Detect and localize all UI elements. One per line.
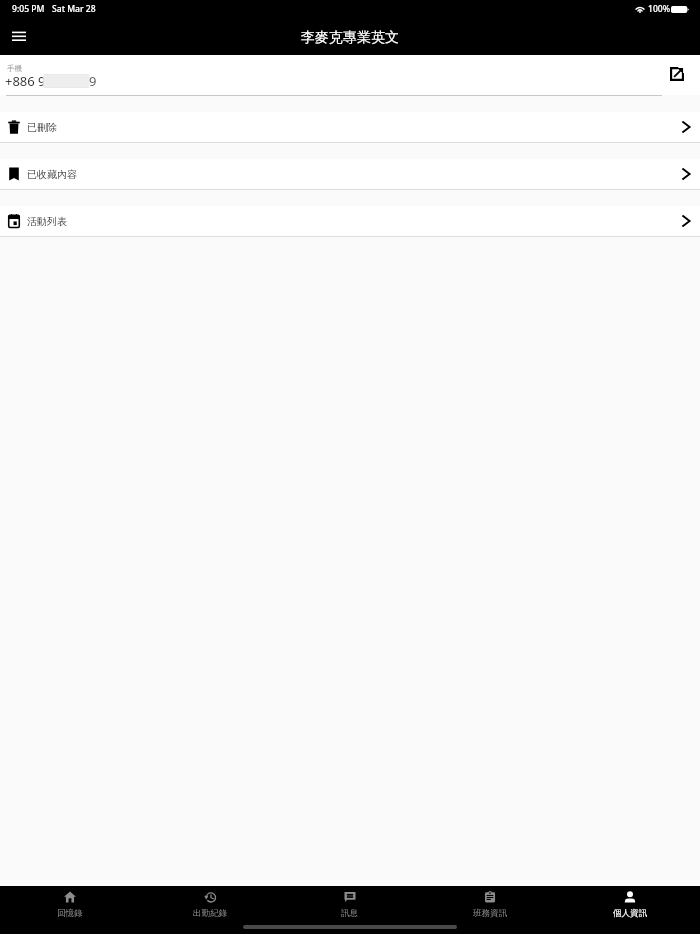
button[interactable]: 個人資訊 bbox=[560, 886, 700, 924]
button[interactable]: 已收藏內容 bbox=[0, 143, 700, 189]
button[interactable]: 已刪除 bbox=[0, 96, 700, 142]
staticText: Sat Mar 28 bbox=[52, 3, 96, 15]
button[interactable]: 回憶錄 bbox=[0, 886, 140, 924]
staticText: +886 9 bbox=[5, 72, 46, 90]
staticText: 個人資訊 bbox=[613, 908, 648, 919]
staticText: 訊息 bbox=[341, 908, 359, 919]
staticText: 班務資訊 bbox=[473, 908, 508, 919]
button[interactable]: 班務資訊 bbox=[420, 886, 560, 924]
staticText: 9 bbox=[89, 72, 97, 90]
staticText: 100% bbox=[648, 3, 671, 15]
staticText: 出勤紀錄 bbox=[193, 908, 228, 919]
staticText: 已刪除 bbox=[27, 121, 57, 134]
button[interactable]: Menu bbox=[6, 23, 32, 49]
button[interactable]: 訊息 bbox=[280, 886, 420, 924]
staticText: 回憶錄 bbox=[57, 908, 83, 919]
staticText: 手機 bbox=[7, 64, 22, 73]
staticText: 李麥克專業英文 bbox=[301, 29, 399, 47]
staticText: 已收藏內容 bbox=[27, 168, 77, 181]
button[interactable]: Open in new bbox=[664, 61, 690, 87]
staticText: 活動列表 bbox=[27, 215, 67, 228]
staticText: 9:05 PM bbox=[12, 3, 45, 15]
button[interactable]: 出勤紀錄 bbox=[140, 886, 280, 924]
button[interactable]: 活動列表 bbox=[0, 190, 700, 236]
